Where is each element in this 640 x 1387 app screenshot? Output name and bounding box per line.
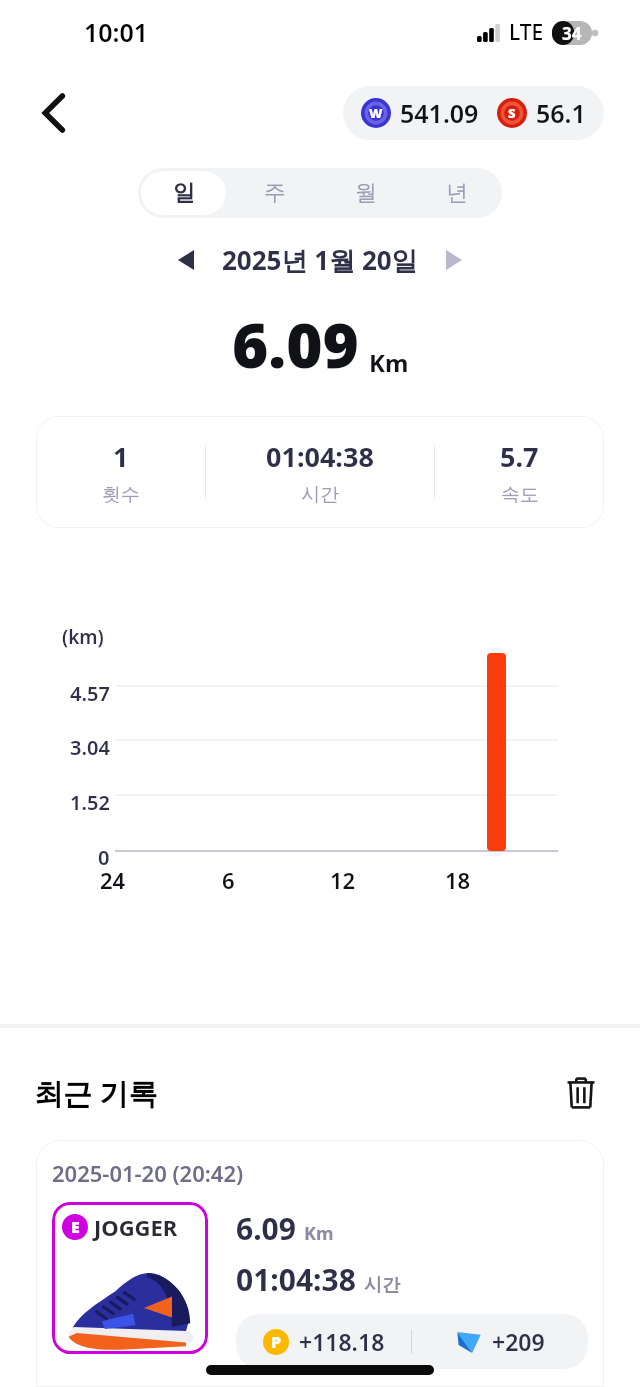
staticText: 6.09 <box>236 1208 296 1249</box>
staticText: 2025년 1월 20일 <box>222 242 418 278</box>
staticText: 3.04 <box>70 734 110 761</box>
staticText: E <box>71 1216 80 1238</box>
staticText: JOGGER <box>94 1212 178 1242</box>
staticText: +209 <box>492 1326 545 1357</box>
staticText: Km <box>369 346 409 379</box>
staticText: 12 <box>330 865 356 895</box>
staticText: 541.09 <box>400 96 479 130</box>
button[interactable]: P <box>236 1314 588 1369</box>
staticText: (km) <box>62 624 104 650</box>
staticText: 10:01 <box>84 15 149 49</box>
staticText: S <box>508 104 516 122</box>
staticText: 월 <box>355 179 377 207</box>
staticText: LTE <box>509 18 544 47</box>
staticText: Km <box>304 1221 334 1246</box>
button[interactable]: 주 <box>232 171 317 215</box>
button[interactable]: 일 <box>141 171 226 215</box>
button[interactable]: 년 <box>414 171 499 215</box>
button[interactable]: 1 <box>36 416 604 528</box>
button[interactable]: Previous day <box>164 238 208 282</box>
staticText: 6 <box>222 865 235 895</box>
staticText: 주 <box>264 179 286 207</box>
staticText: 34 <box>562 22 582 45</box>
staticText: 속도 <box>501 483 539 507</box>
staticText: 0 <box>98 844 110 871</box>
staticText: 시간 <box>364 1274 400 1297</box>
button[interactable]: 2025-01-20 (20:42) <box>36 1140 604 1387</box>
staticText: 01:04:38 <box>266 438 374 475</box>
button[interactable]: E <box>52 1202 208 1354</box>
button[interactable]: Back <box>28 87 80 139</box>
staticText: 24 <box>100 865 126 895</box>
staticText: 시간 <box>301 483 339 507</box>
staticText: 1 <box>113 438 129 475</box>
staticText: 4.57 <box>70 680 110 707</box>
staticText: 6.09 <box>232 302 359 386</box>
staticText: 1.52 <box>70 789 110 816</box>
staticText: P <box>271 1331 282 1353</box>
staticText: W <box>369 104 383 122</box>
staticText: 횟수 <box>102 483 140 507</box>
staticText: 일 <box>173 179 195 207</box>
staticText: 년 <box>446 179 468 207</box>
staticText: 최근 기록 <box>34 1073 158 1113</box>
staticText: 01:04:38 <box>236 1259 356 1300</box>
staticText: +118.18 <box>299 1326 385 1357</box>
button[interactable]: W <box>343 86 604 140</box>
button[interactable]: Next day <box>432 238 476 282</box>
staticText: 56.1 <box>536 96 586 130</box>
staticText: 18 <box>445 865 471 895</box>
button[interactable]: Delete <box>558 1070 604 1116</box>
button[interactable]: 월 <box>323 171 408 215</box>
staticText: 2025-01-20 (20:42) <box>52 1158 244 1188</box>
staticText: 5.7 <box>500 438 539 475</box>
